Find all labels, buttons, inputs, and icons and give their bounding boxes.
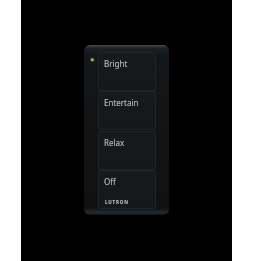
button[interactable]: Entertain — [98, 91, 156, 130]
button[interactable]: Off — [98, 170, 156, 209]
button[interactable]: Bright — [98, 52, 156, 91]
staticText: Entertain — [104, 97, 139, 108]
other: Lutron keypad — [84, 45, 169, 215]
button[interactable]: Relax — [98, 131, 156, 170]
staticText: Bright — [104, 58, 128, 69]
staticText: LUTRON — [105, 199, 129, 205]
staticText: Off — [104, 176, 116, 187]
staticText: Relax — [104, 137, 125, 148]
